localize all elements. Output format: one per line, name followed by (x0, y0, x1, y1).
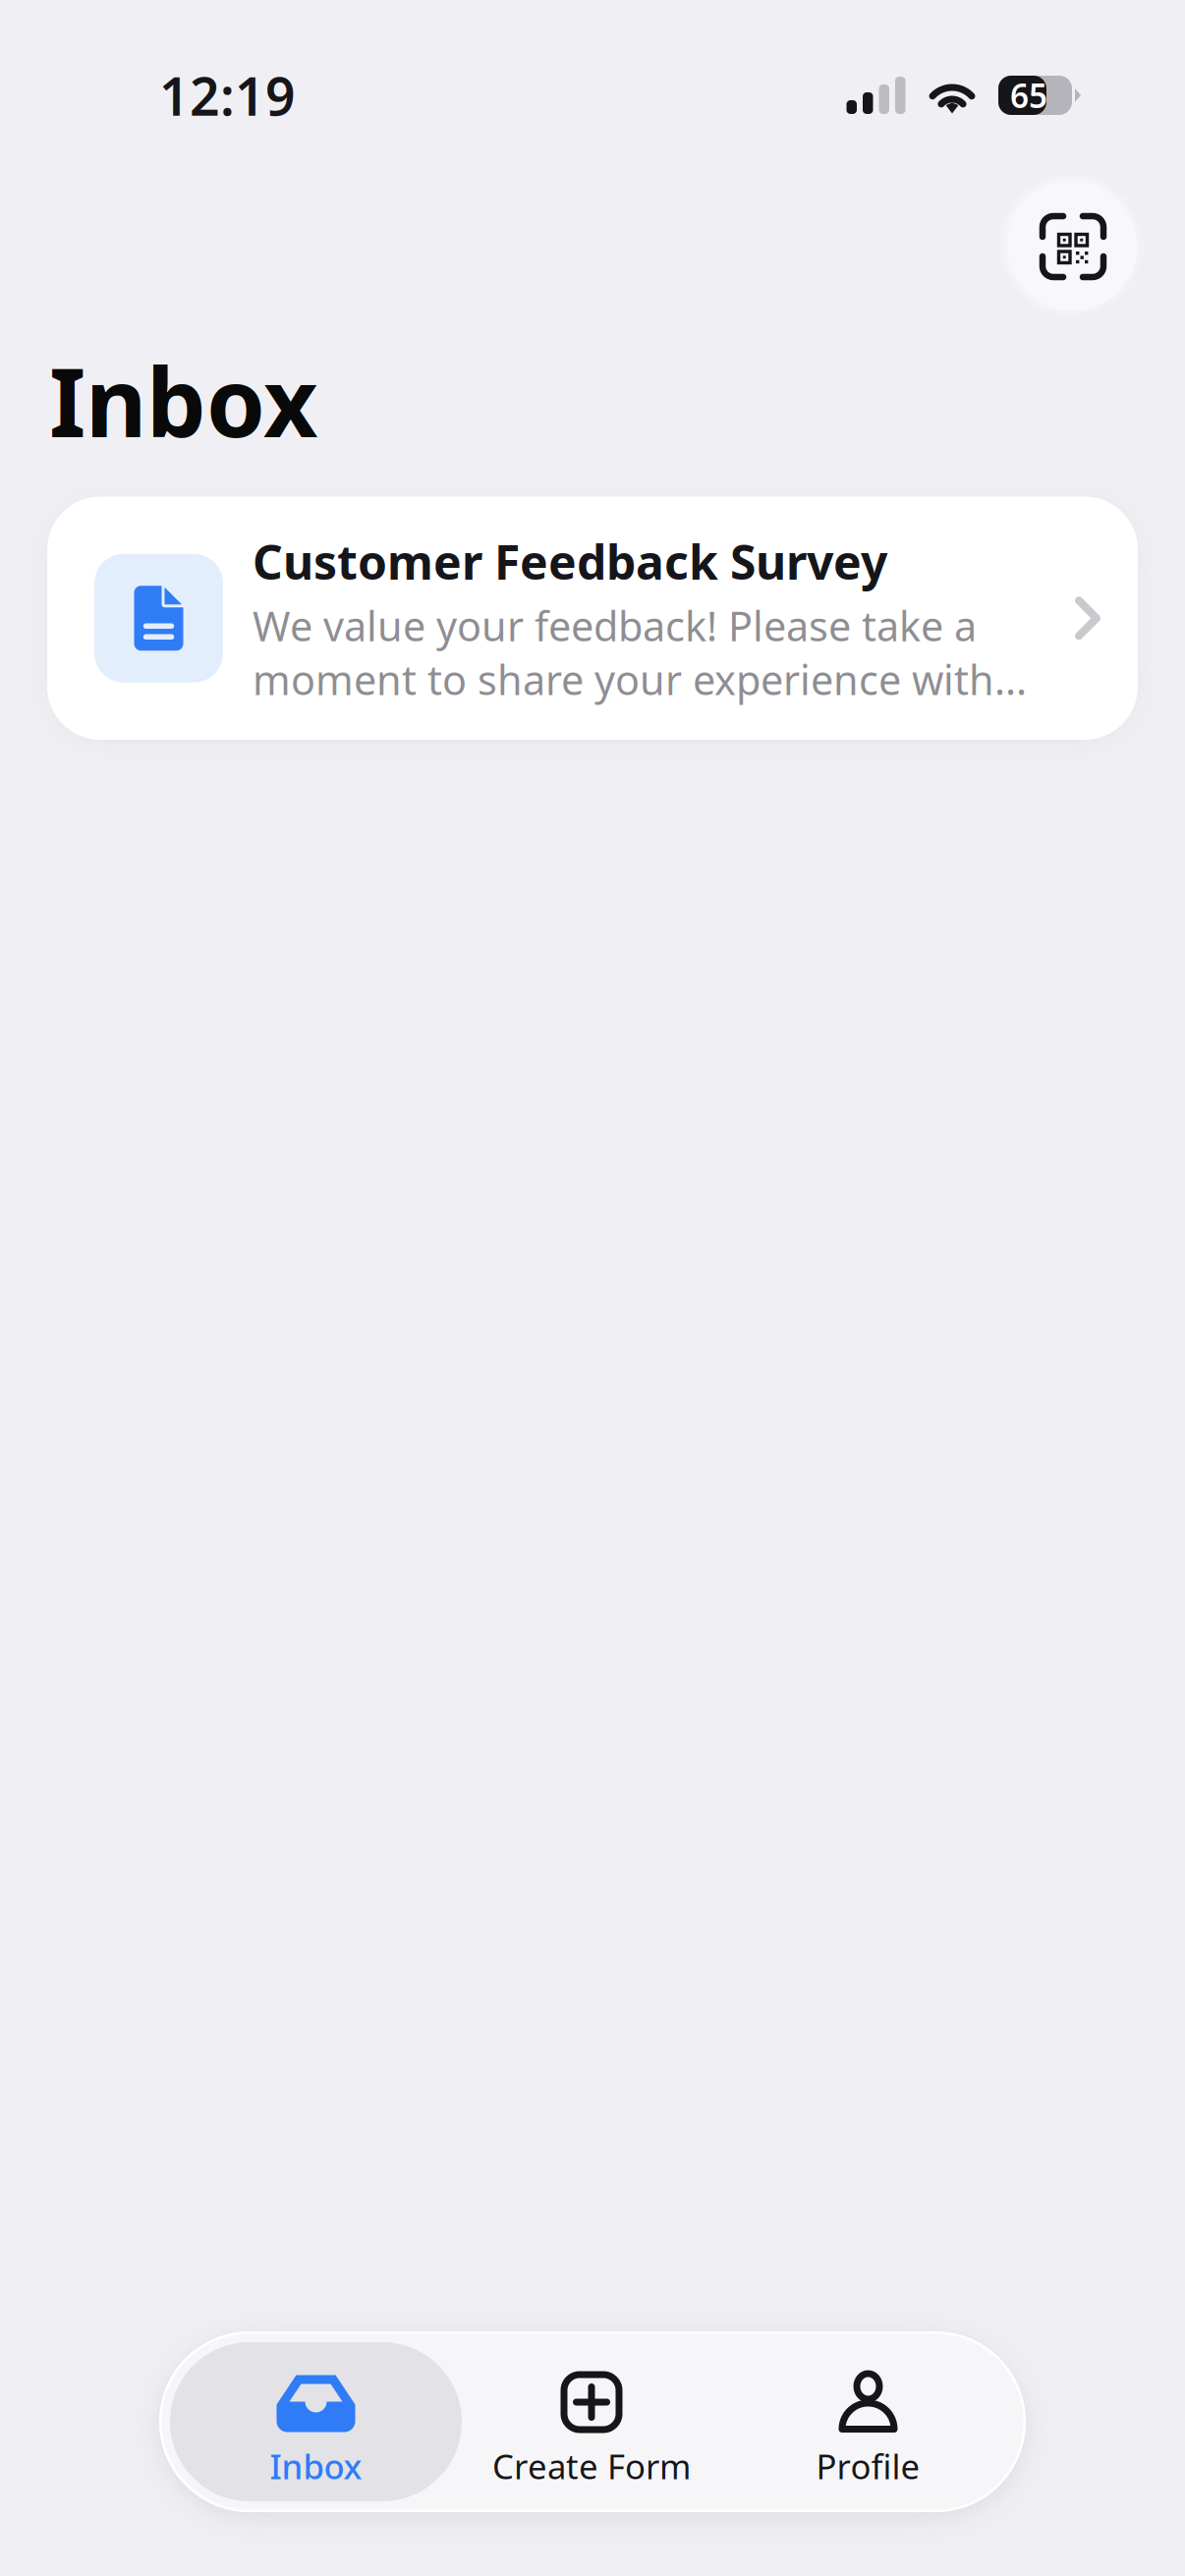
staticText: Inbox (49, 338, 317, 463)
staticText: Profile (816, 2443, 920, 2489)
staticText: Customer Feedback Survey (253, 530, 887, 593)
button[interactable]: Scan QR code (1009, 183, 1137, 310)
staticText: We value your feedback! Please take a mo… (253, 599, 1027, 706)
staticText: 12:19 (159, 61, 296, 130)
button[interactable]: Create Form (462, 2342, 721, 2501)
button[interactable]: Profile (721, 2342, 1015, 2501)
button[interactable]: Inbox (170, 2342, 462, 2501)
button[interactable]: Customer Feedback Survey (47, 497, 1138, 740)
staticText: 65 (1010, 74, 1047, 117)
staticText: Create Form (492, 2443, 691, 2489)
staticText: Inbox (270, 2443, 362, 2489)
